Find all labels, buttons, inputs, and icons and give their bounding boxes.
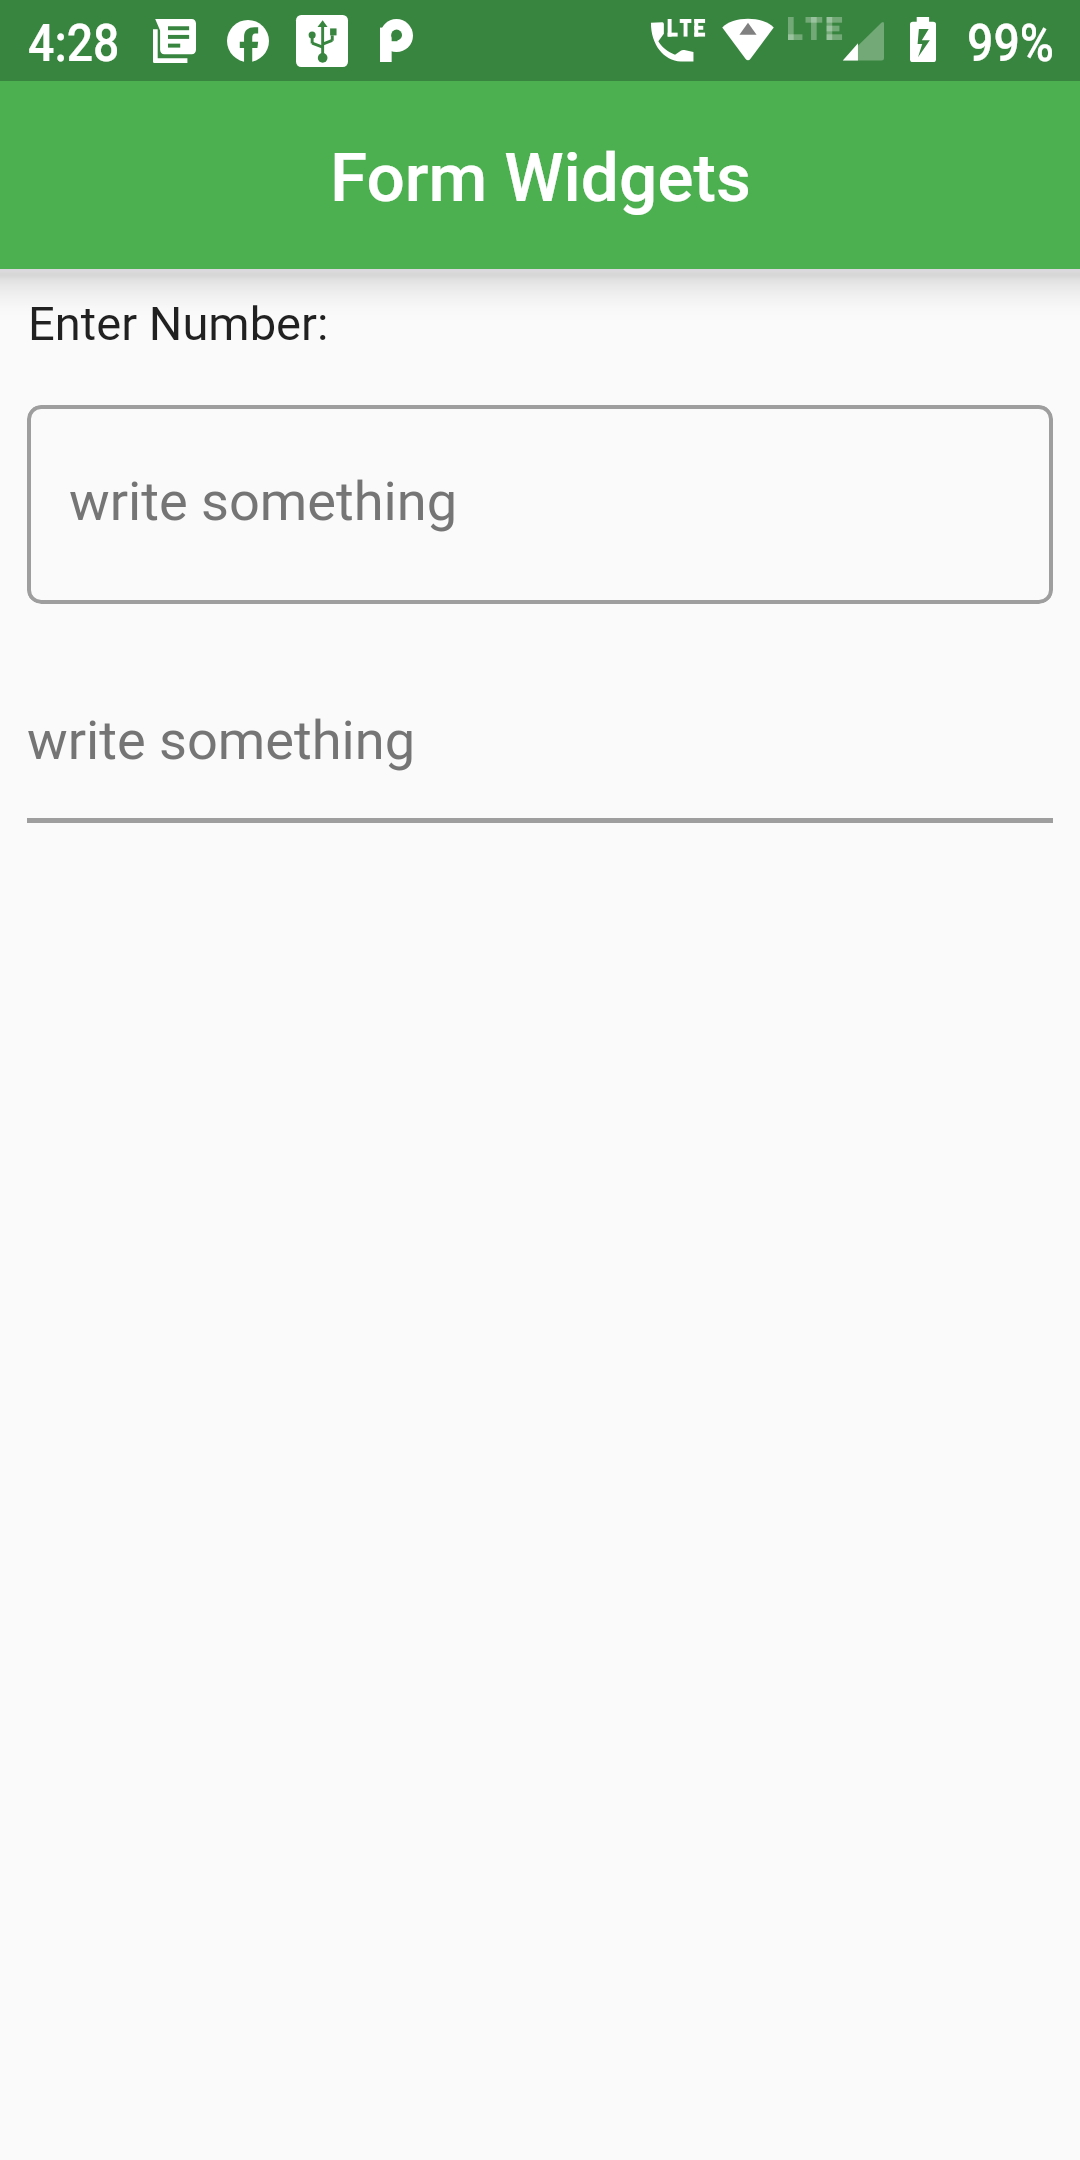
button[interactable]: write something, text field (27, 715, 1053, 823)
staticText: write something (69, 470, 458, 533)
button[interactable]: Enter number, outlined text field (27, 405, 1053, 604)
staticText: write something (27, 709, 416, 772)
staticText: Form Widgets (330, 138, 751, 217)
staticText: Enter Number: (28, 296, 329, 351)
staticText: 99% (967, 13, 1054, 73)
staticText: 4:28 (28, 13, 120, 73)
